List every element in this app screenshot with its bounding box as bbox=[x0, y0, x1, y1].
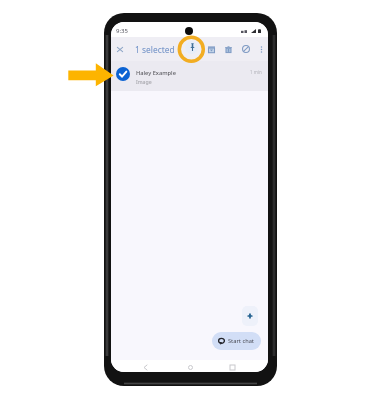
button[interactable]: Archive bbox=[203, 41, 219, 57]
button[interactable]: New chat bbox=[242, 306, 258, 326]
button[interactable]: Pin bbox=[183, 39, 199, 55]
button[interactable]: Block bbox=[238, 41, 254, 57]
button[interactable]: Back bbox=[139, 361, 151, 372]
staticText: Image bbox=[136, 78, 152, 85]
button[interactable]: More options bbox=[253, 41, 268, 57]
button[interactable]: Close selection bbox=[112, 41, 128, 57]
button[interactable]: Start chat bbox=[212, 332, 261, 350]
staticText: 1 selected bbox=[135, 44, 175, 55]
button[interactable]: Home bbox=[184, 361, 196, 372]
staticText: Start chat bbox=[228, 337, 254, 345]
button[interactable]: Recent apps bbox=[226, 361, 238, 372]
staticText: Haley Example bbox=[136, 69, 176, 77]
button[interactable]: Haley Example bbox=[111, 61, 268, 91]
button[interactable]: Delete bbox=[220, 41, 236, 57]
staticText: 9:35 bbox=[116, 27, 128, 35]
staticText: 1 min bbox=[250, 69, 262, 75]
